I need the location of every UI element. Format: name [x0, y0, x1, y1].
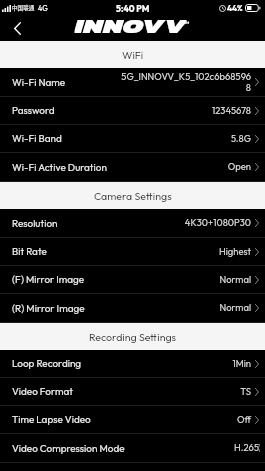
button[interactable]: Wi-Fi Active Duration	[0, 153, 265, 182]
staticText: Wi-Fi Active Duration	[12, 161, 107, 174]
button[interactable]: Video Compression Mode	[0, 434, 265, 463]
staticText: Time Lapse Video	[12, 413, 91, 426]
button[interactable]: Time Lapse Video	[0, 406, 265, 434]
button[interactable]: Back	[0, 16, 34, 41]
staticText: Video Format	[12, 385, 73, 398]
button[interactable]: Password	[0, 97, 265, 125]
staticText: Password	[12, 104, 55, 117]
staticText: Bit Rate	[12, 245, 47, 258]
staticText: Camera Settings	[94, 189, 172, 202]
button[interactable]: (F) Mirror Image	[0, 266, 265, 294]
staticText: (F) Mirror Image	[12, 273, 85, 286]
staticText: 44%	[227, 3, 243, 13]
staticText: Normal	[117, 274, 251, 286]
staticText: 1Min	[117, 358, 251, 370]
staticText: (R) Mirror Image	[12, 302, 85, 315]
staticText: 中国联通	[12, 4, 35, 12]
staticText: Wi-Fi Name	[12, 76, 66, 89]
staticText: 12345678	[117, 105, 251, 117]
staticText: Open	[117, 161, 251, 173]
staticText: INNOVV	[74, 11, 187, 36]
button[interactable]: (R) Mirror Image	[0, 294, 265, 323]
staticText: Normal	[117, 302, 251, 314]
staticText: Wi-Fi Band	[12, 132, 62, 145]
staticText: Loop Recording	[12, 357, 82, 370]
staticText: ™	[184, 19, 190, 28]
button[interactable]: Video Format	[0, 378, 265, 406]
staticText: WiFi	[122, 48, 144, 61]
staticText: 5G_INNOVV_K5_102c6b685968	[117, 71, 251, 93]
button[interactable]: Resolution	[0, 209, 265, 238]
staticText: Highest	[117, 246, 251, 258]
button[interactable]: Loop Recording	[0, 350, 265, 378]
button[interactable]: Bit Rate	[0, 238, 265, 266]
staticText: H.265	[125, 442, 259, 454]
staticText: 5.8G	[117, 133, 251, 145]
button[interactable]: Wi-Fi Band	[0, 125, 265, 153]
button[interactable]: Wi-Fi Name	[0, 68, 265, 97]
staticText: Video Compression Mode	[12, 442, 125, 455]
staticText: Resolution	[12, 217, 58, 230]
staticText: Off	[117, 414, 251, 426]
staticText: TS	[117, 386, 251, 398]
staticText: 5:40 PM	[116, 3, 150, 14]
staticText: 4G	[38, 4, 48, 13]
staticText: 4K30+1080P30	[117, 217, 251, 229]
staticText: Recording Settings	[89, 330, 177, 343]
